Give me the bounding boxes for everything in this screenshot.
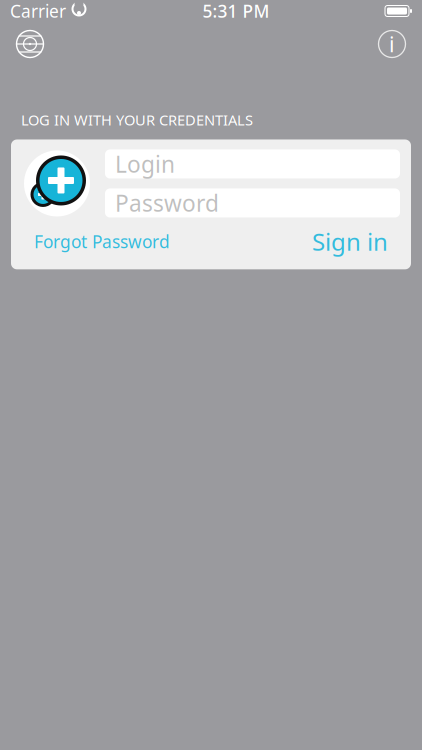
staticText: Carrier [10, 0, 66, 22]
staticText: 5:31 PM [202, 0, 269, 22]
button[interactable]: Sign in [310, 221, 390, 261]
staticText: LOG IN WITH YOUR CREDENTIALS [21, 110, 253, 129]
staticText: Login [115, 149, 175, 179]
button[interactable]: Forgot Password [32, 224, 172, 259]
button[interactable]: Information [370, 22, 414, 66]
staticText: Forgot Password [34, 230, 170, 253]
staticText: Sign in [312, 225, 388, 257]
button[interactable]: Language [8, 22, 52, 66]
staticText: i [389, 30, 395, 58]
staticText: Password [115, 188, 219, 218]
